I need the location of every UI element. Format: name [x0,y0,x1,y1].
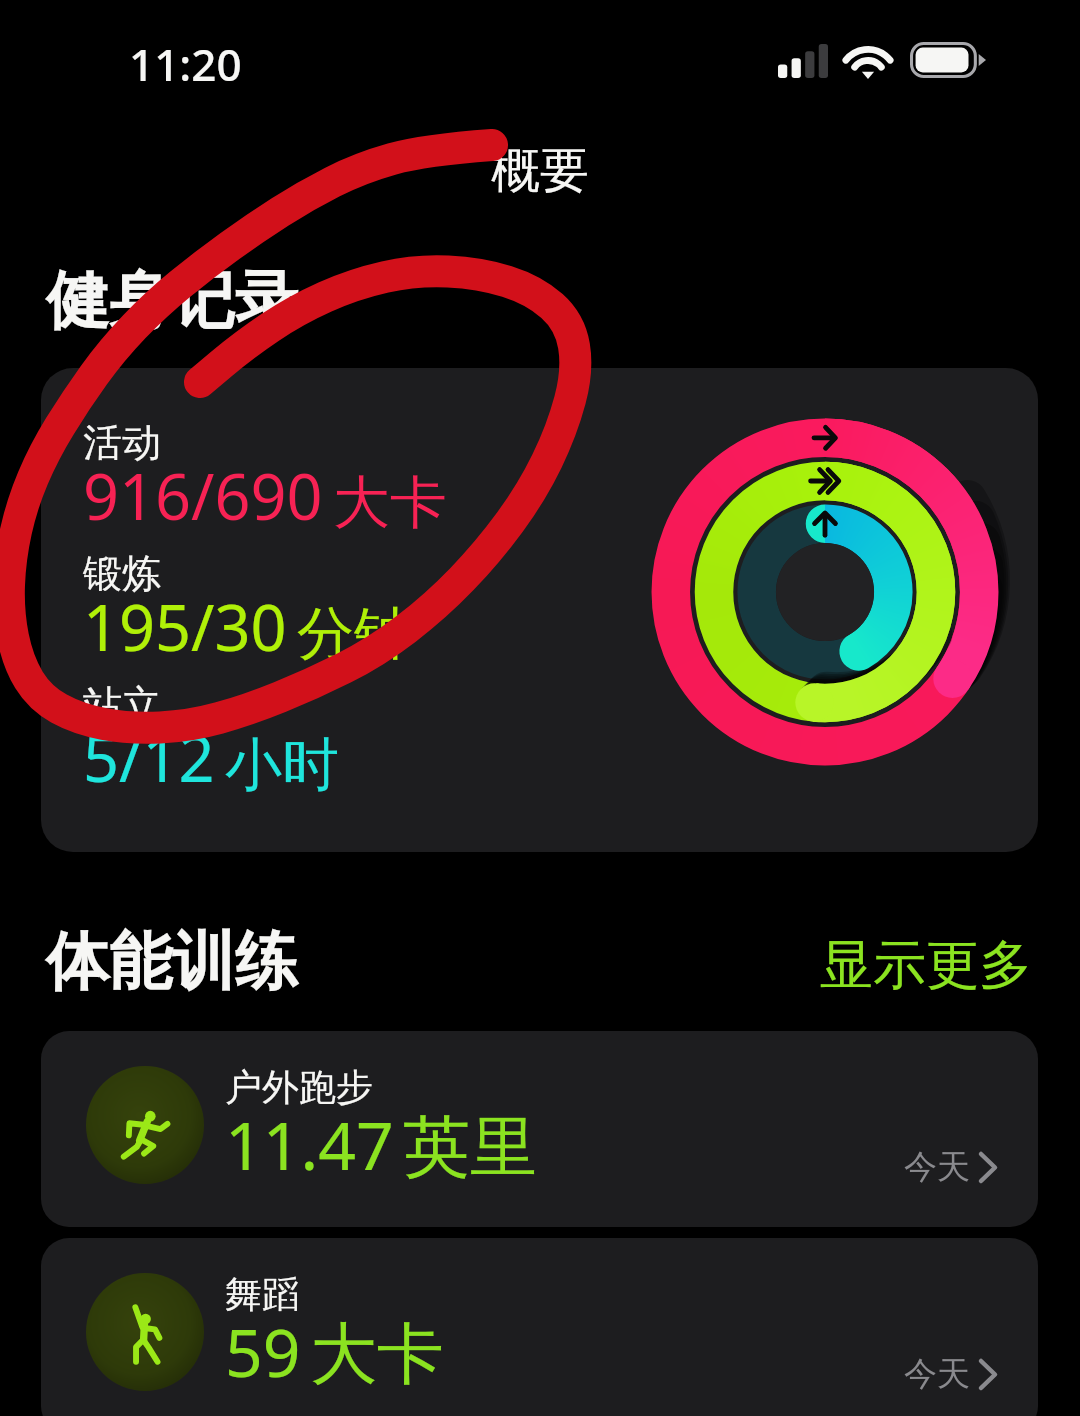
button[interactable]: 活动 [41,368,1038,852]
staticText: 舞蹈 [225,1271,299,1318]
staticText: 锻炼 [83,549,161,598]
staticText: 11.47 [225,1099,394,1189]
other: Open workout details [979,1152,997,1183]
staticText: 今天 [904,1353,970,1395]
staticText: 11:20 [129,34,242,94]
staticText: 大卡 [310,1312,444,1396]
staticText: 户外跑步 [225,1064,373,1111]
staticText: 活动 [83,418,161,467]
staticText: 概要 [0,140,1080,202]
other: Battery [910,42,986,78]
staticText: 59 [225,1306,301,1396]
staticText: 英里 [403,1105,537,1189]
other: Activity rings [651,418,999,766]
staticText: 今天 [904,1146,970,1188]
button[interactable]: Outdoor run [41,1031,1038,1227]
staticText: 健身记录 [46,261,298,340]
other: Wi-Fi [844,44,892,80]
staticText: 195/30 [83,584,287,670]
button[interactable]: Dance [41,1238,1038,1416]
staticText: 体能训练 [46,922,298,1001]
staticText: 5/12 [83,715,215,801]
staticText: 小时 [225,729,339,801]
other: Cellular signal [778,44,828,78]
staticText: 大卡 [333,467,447,539]
other: Open workout details [979,1359,997,1390]
other: Dance [86,1273,204,1391]
staticText: 分钟 [297,598,411,670]
staticText: 显示更多 [820,932,1032,999]
staticText: 站立 [83,680,161,729]
button[interactable]: 显示更多 [804,918,1048,1013]
staticText: 916/690 [83,453,323,539]
other: Outdoor run [86,1066,204,1184]
